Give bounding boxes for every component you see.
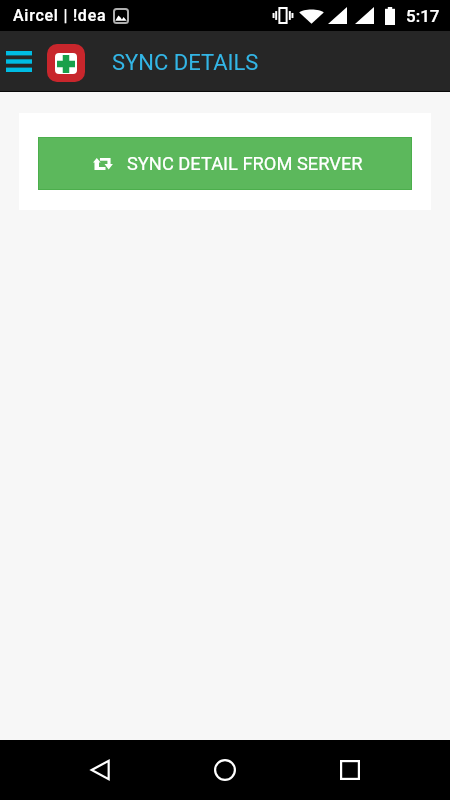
staticText: Aircel | !dea xyxy=(13,6,107,25)
staticText: SYNC DETAILS xyxy=(112,50,259,76)
staticText: 5:17 xyxy=(406,6,440,26)
staticText: SYNC DETAIL FROM SERVER xyxy=(127,153,363,174)
button[interactable]: Open navigation menu xyxy=(0,31,38,91)
button[interactable]: SYNC DETAIL FROM SERVER xyxy=(38,137,412,190)
button[interactable]: Back xyxy=(75,740,125,800)
button[interactable]: Home xyxy=(200,740,250,800)
button[interactable]: Recent apps xyxy=(325,740,375,800)
